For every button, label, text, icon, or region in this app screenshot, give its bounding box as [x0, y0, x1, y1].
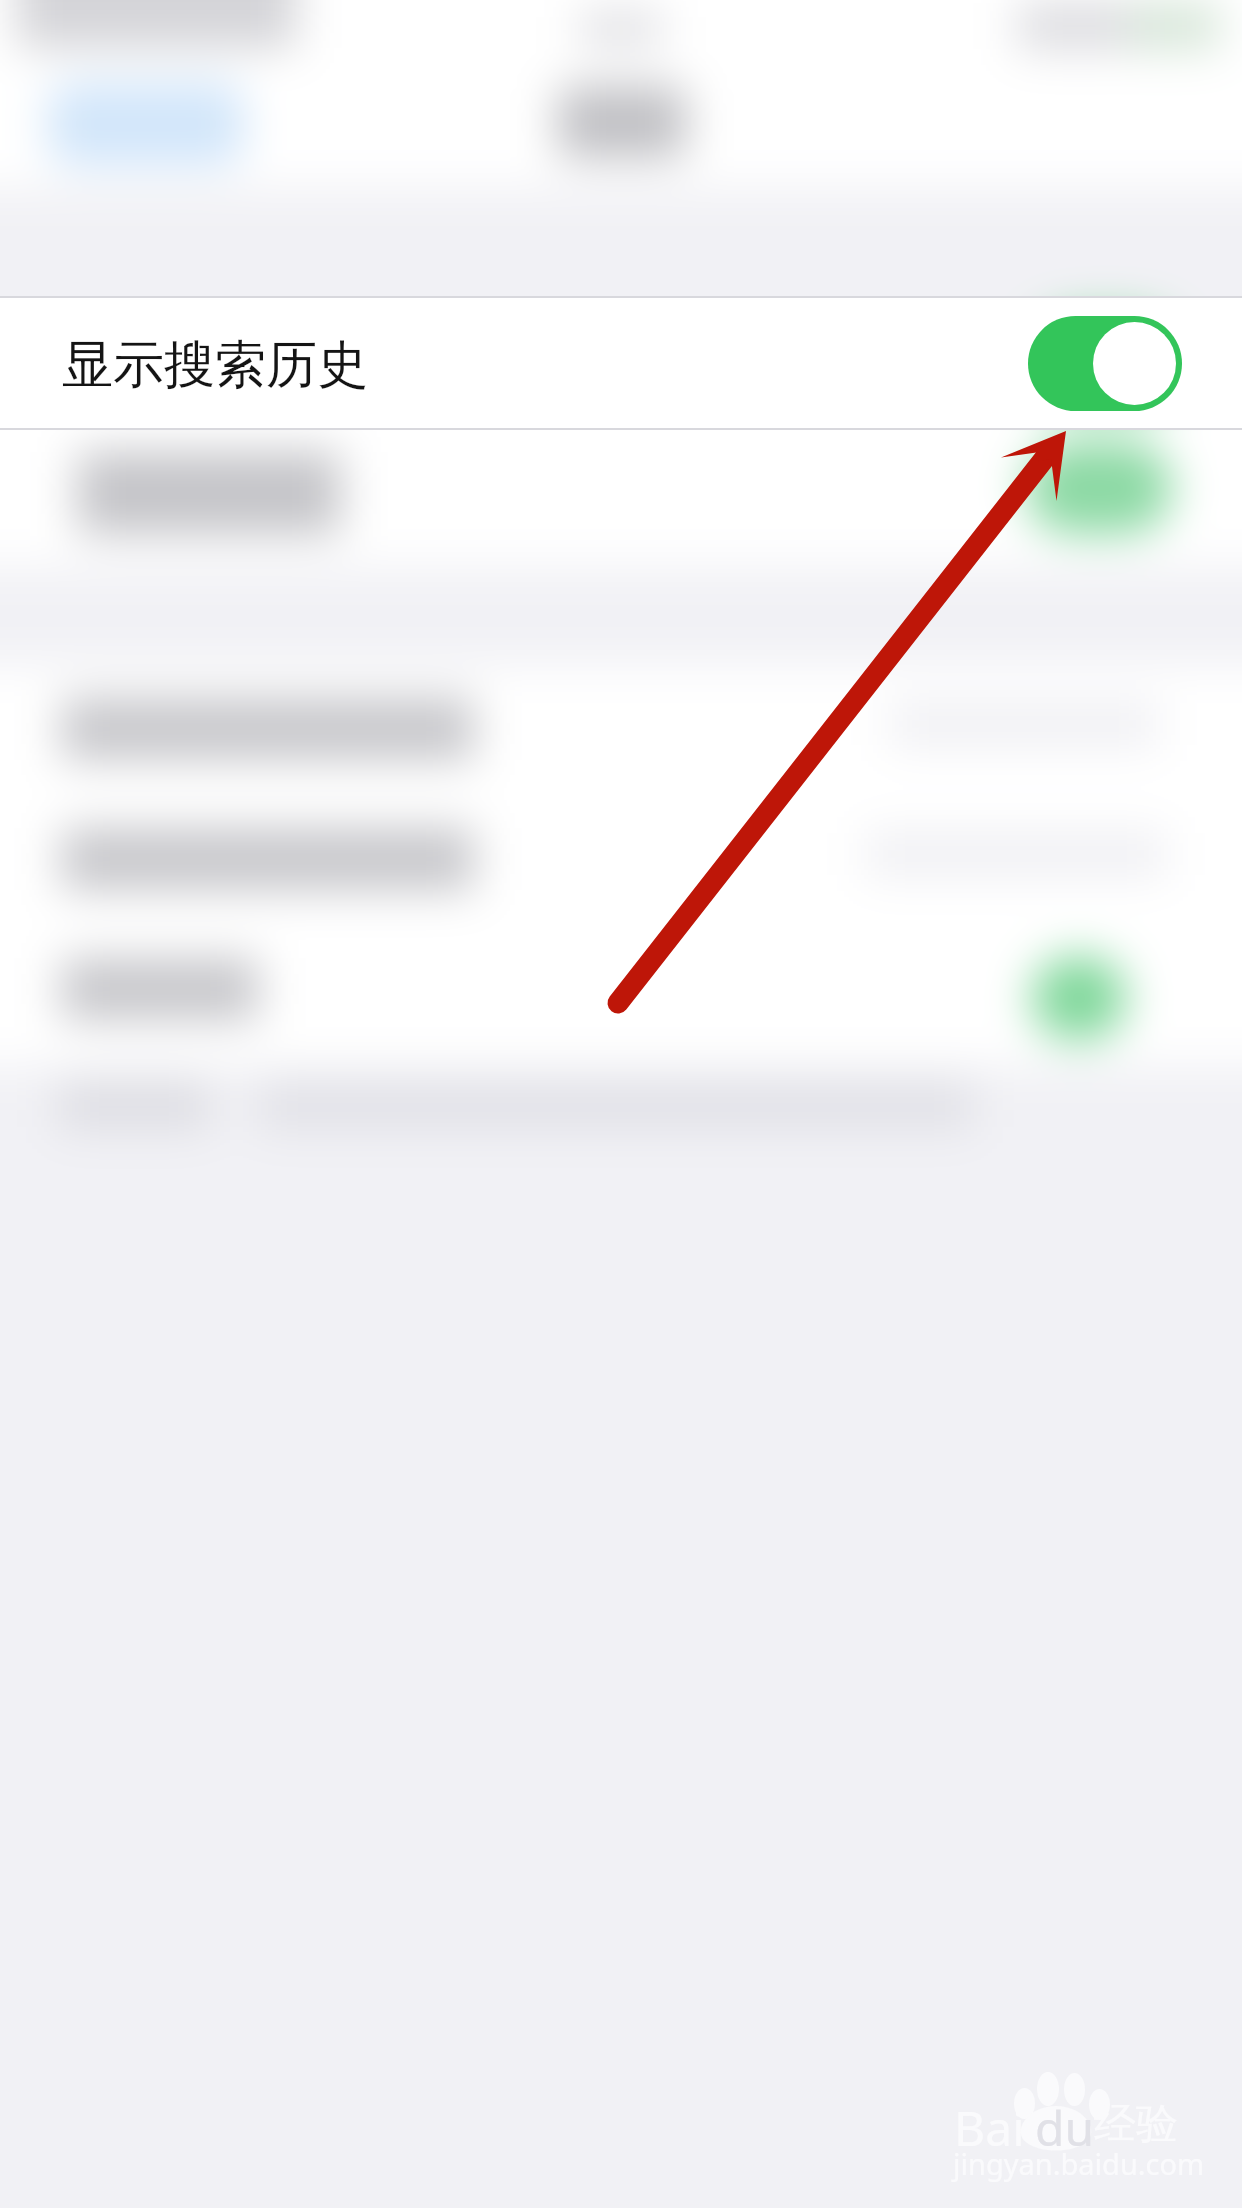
button[interactable]: 显示搜索历史 [0, 298, 1242, 428]
staticText: Bai [954, 2095, 1025, 2160]
staticText: du [1035, 2095, 1095, 2160]
staticText: 显示搜索历史 [62, 333, 368, 397]
staticText: 经验 [1094, 2098, 1178, 2151]
button[interactable]: Toggle show search history [1028, 316, 1182, 411]
staticText: jingyan.baidu.com [953, 2144, 1205, 2183]
other: Baidu Jingyan watermark [952, 2066, 1212, 2186]
